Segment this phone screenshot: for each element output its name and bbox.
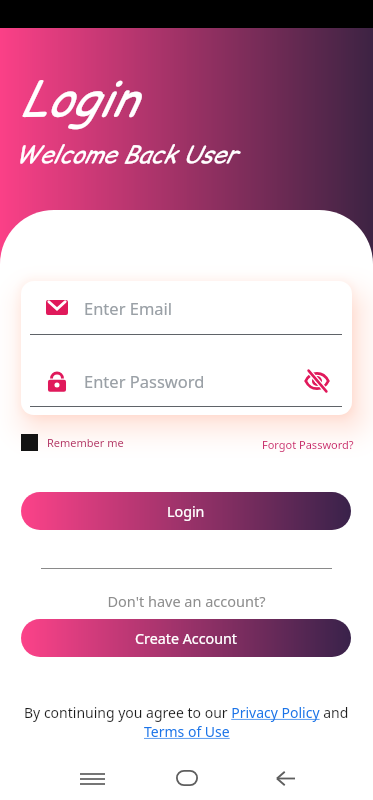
button[interactable]: Home xyxy=(168,759,205,796)
staticText: Enter Email xyxy=(84,297,173,319)
button[interactable]: Remember me xyxy=(21,434,124,451)
button[interactable]: Toggle password visibility xyxy=(305,369,329,393)
button[interactable]: Create Account xyxy=(21,619,351,657)
button[interactable]: Terms of Use xyxy=(144,722,230,741)
button[interactable]: Recent apps xyxy=(74,760,111,797)
staticText: Login xyxy=(167,502,205,521)
staticText: Enter Password xyxy=(84,370,205,392)
staticText: Don't have an account? xyxy=(0,591,373,611)
staticText: Remember me xyxy=(47,435,124,450)
staticText: Create Account xyxy=(135,629,238,648)
button[interactable]: Login xyxy=(21,492,351,530)
staticText: Welcome Back User xyxy=(14,138,237,171)
button[interactable]: Forgot Password? xyxy=(262,437,354,452)
staticText: Login xyxy=(20,65,136,132)
button[interactable]: Back xyxy=(267,760,304,797)
staticText: By continuing you agree to our Privacy P… xyxy=(24,703,349,722)
